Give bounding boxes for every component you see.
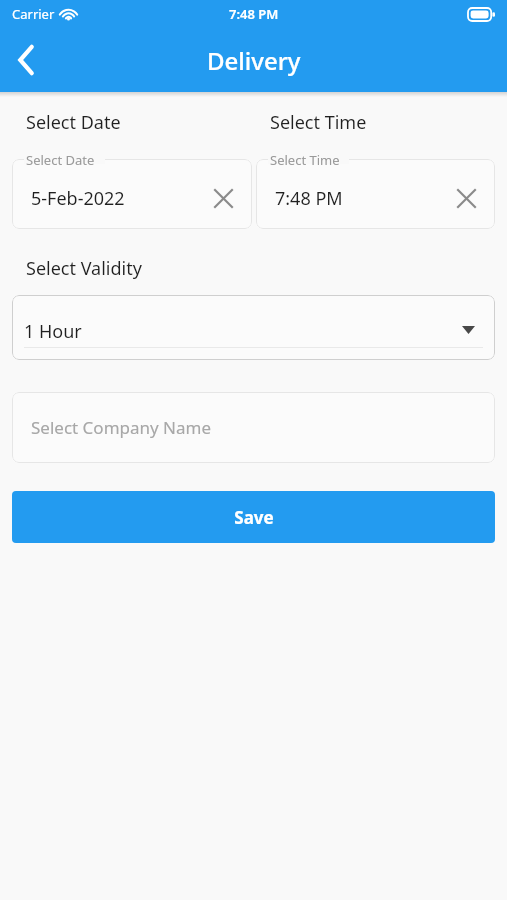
staticText: Select Company Name: [31, 416, 212, 439]
staticText: Select Date: [26, 151, 95, 169]
button[interactable]: 1 Hour: [12, 295, 495, 360]
button[interactable]: Select Company Name: [12, 392, 495, 463]
staticText: Save: [234, 506, 274, 529]
staticText: Select Time: [270, 151, 340, 169]
staticText: Select Time: [270, 110, 367, 135]
staticText: 7:48 PM: [275, 186, 343, 211]
staticText: Select Validity: [26, 256, 142, 281]
staticText: Carrier: [12, 5, 55, 23]
button[interactable]: Back: [0, 34, 52, 86]
staticText: 7:48 PM: [229, 5, 279, 23]
button[interactable]: Select Date: [12, 149, 252, 229]
staticText: 1 Hour: [24, 319, 82, 344]
staticText: Select Date: [26, 110, 121, 135]
button[interactable]: Select Time: [256, 149, 495, 229]
button[interactable]: Clear Select Time: [449, 181, 483, 215]
staticText: Delivery: [207, 44, 301, 77]
staticText: 5-Feb-2022: [31, 186, 125, 211]
button[interactable]: Open validity options: [455, 317, 481, 343]
button[interactable]: Clear Select Date: [206, 181, 240, 215]
button[interactable]: Save: [12, 491, 495, 543]
